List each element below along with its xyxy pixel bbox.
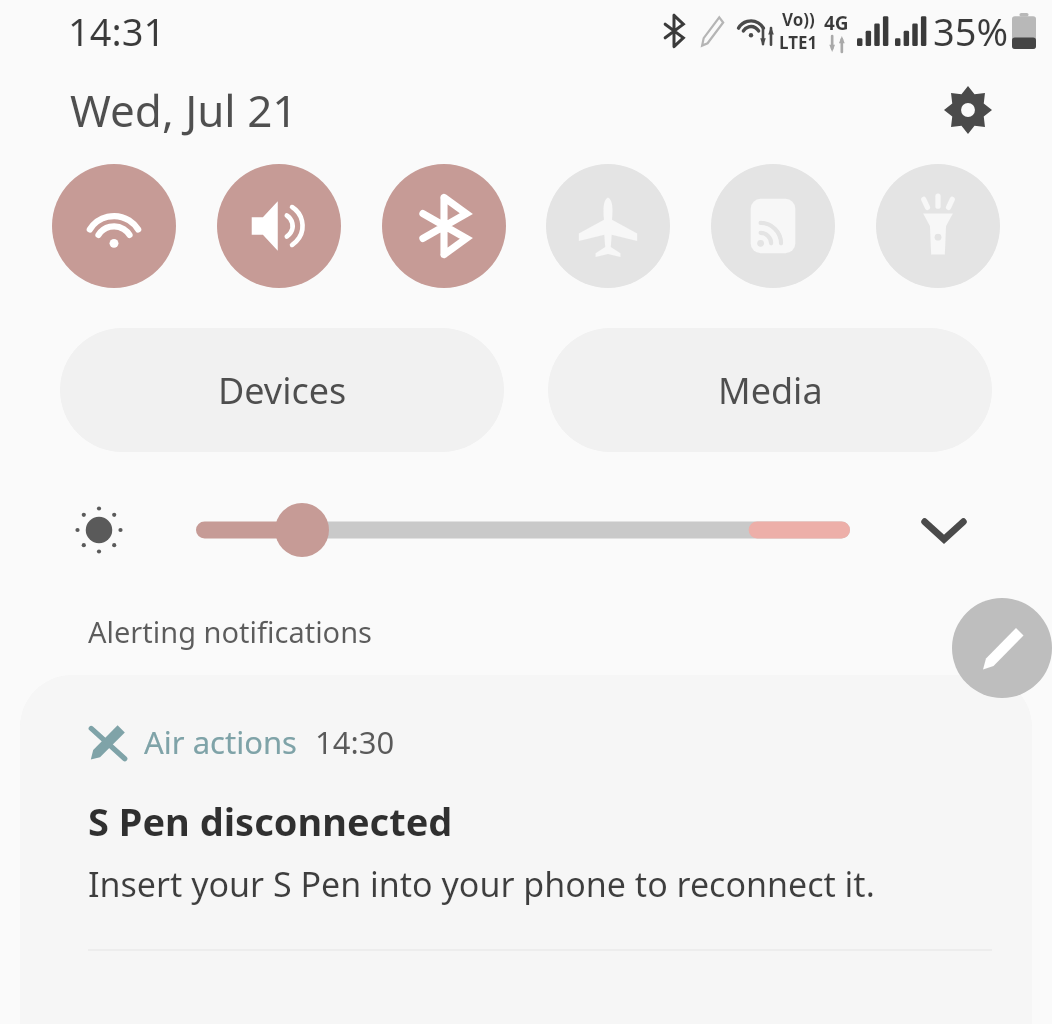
- staticText: S Pen disconnected: [88, 795, 453, 847]
- button[interactable]: Airplane mode: [546, 164, 670, 288]
- button[interactable]: Flashlight: [876, 164, 1000, 288]
- button[interactable]: Smart View: [711, 164, 835, 288]
- staticText: Media: [718, 366, 823, 415]
- button[interactable]: Media: [548, 328, 992, 452]
- staticText: 4G: [824, 10, 849, 36]
- staticText: Insert your S Pen into your phone to rec…: [88, 861, 875, 907]
- button[interactable]: Expand: [910, 496, 978, 564]
- staticText: Vo)): [782, 8, 815, 31]
- button[interactable]: Settings: [940, 82, 996, 138]
- button[interactable]: Air actions: [20, 675, 1032, 1024]
- button[interactable]: Sound: [217, 164, 341, 288]
- button[interactable]: Write with S Pen: [952, 598, 1052, 698]
- staticText: 14:30: [315, 721, 395, 763]
- staticText: 35%: [933, 5, 1009, 57]
- button[interactable]: Wi-Fi: [52, 164, 176, 288]
- staticText: Air actions: [144, 721, 297, 763]
- button[interactable]: Devices: [60, 328, 504, 452]
- button[interactable]: Bluetooth: [382, 164, 506, 288]
- staticText: Devices: [218, 366, 347, 415]
- staticText: LTE1: [779, 31, 818, 54]
- button[interactable]: [196, 492, 850, 568]
- staticText: Wed, Jul 21: [70, 80, 298, 140]
- staticText: Alerting notifications: [88, 612, 372, 651]
- staticText: 14:31: [68, 5, 166, 57]
